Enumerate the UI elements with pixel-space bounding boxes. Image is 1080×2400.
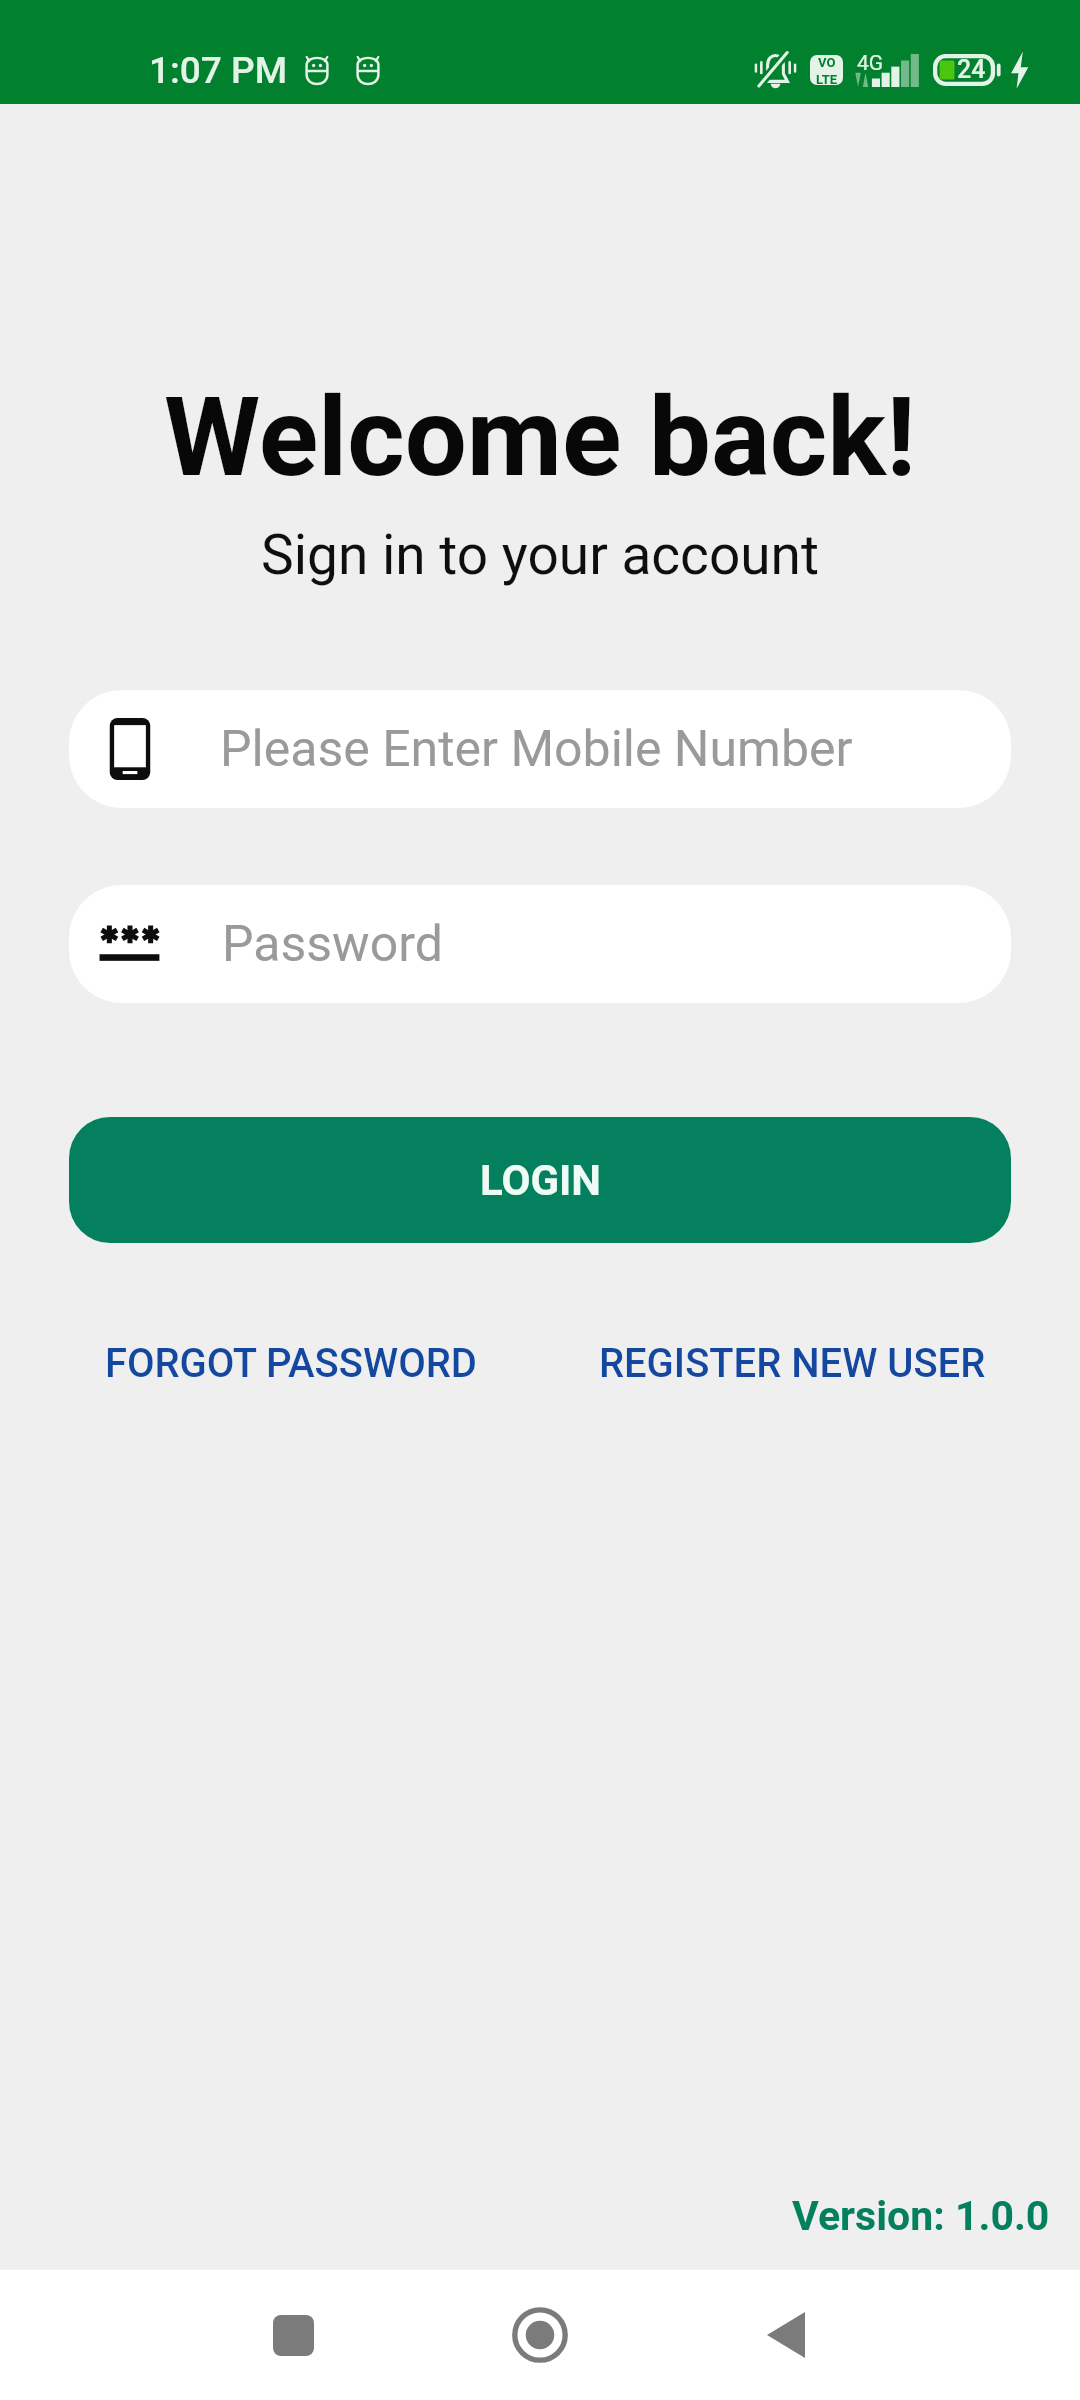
button[interactable]: LOGIN xyxy=(69,1117,1011,1243)
staticText: LOGIN xyxy=(480,1156,601,1205)
button[interactable]: Back xyxy=(741,2290,831,2380)
staticText: FORGOT PASSWORD xyxy=(105,1340,477,1387)
staticText: Version: 1.0.0 xyxy=(792,2192,1050,2240)
button[interactable]: REGISTER NEW USER xyxy=(591,1324,994,1403)
staticText: 24 xyxy=(957,55,986,84)
button[interactable]: Recent apps xyxy=(248,2290,338,2380)
staticText: REGISTER NEW USER xyxy=(599,1340,986,1387)
staticText: Sign in to your account xyxy=(261,523,819,587)
staticText: VO xyxy=(818,55,836,70)
staticText: 4G xyxy=(857,51,884,76)
button[interactable]: Please Enter Mobile Number xyxy=(69,690,1011,808)
staticText: Welcome back! xyxy=(164,373,916,502)
button[interactable]: Password xyxy=(69,885,1011,1003)
staticText: LTE xyxy=(816,72,838,85)
button[interactable]: FORGOT PASSWORD xyxy=(97,1324,485,1403)
staticText: 1:07 PM xyxy=(149,49,288,92)
staticText: Password xyxy=(222,915,443,974)
button[interactable]: Home xyxy=(495,2290,585,2380)
staticText: Please Enter Mobile Number xyxy=(220,720,853,779)
